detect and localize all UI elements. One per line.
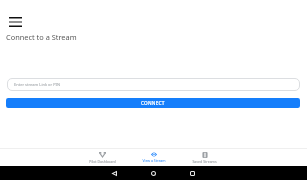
button[interactable]: CONNECT bbox=[6, 98, 300, 108]
other: Back bbox=[112, 171, 117, 176]
staticText: Pilot Dashboard bbox=[89, 159, 116, 164]
staticText: CONNECT bbox=[141, 100, 165, 106]
staticText: Connect to a Stream bbox=[6, 32, 77, 42]
button[interactable]: Saved Streams bbox=[179, 149, 230, 166]
button[interactable]: View a Stream bbox=[128, 149, 179, 166]
other: Recents bbox=[190, 171, 195, 176]
other: Home bbox=[151, 171, 156, 176]
staticText: View a Stream bbox=[142, 158, 166, 163]
staticText: Saved Streams bbox=[192, 159, 217, 164]
staticText: Enter stream Link or PIN bbox=[14, 82, 61, 87]
button[interactable]: Menu bbox=[5, 14, 25, 30]
button[interactable]: Pilot Dashboard bbox=[77, 149, 128, 166]
button[interactable]: Back bbox=[95, 166, 134, 180]
button[interactable]: Enter stream Link or PIN bbox=[7, 78, 300, 91]
button[interactable]: Recents bbox=[173, 166, 212, 180]
button[interactable]: Home bbox=[134, 166, 173, 180]
